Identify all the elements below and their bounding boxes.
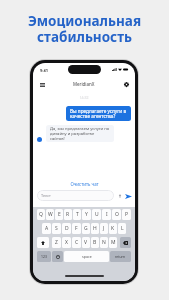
button[interactable]: Текст: [37, 190, 114, 201]
staticText: R: [66, 211, 70, 218]
button[interactable]: Shift: [37, 237, 49, 248]
staticText: W: [48, 211, 53, 218]
button[interactable]: Settings: [122, 80, 131, 89]
button[interactable]: E: [55, 209, 63, 220]
button[interactable]: Attach: [116, 192, 123, 199]
staticText: L: [121, 225, 124, 232]
staticText: N: [102, 239, 106, 246]
staticText: S: [55, 225, 58, 232]
staticText: F: [75, 225, 78, 232]
staticText: 9:41: [40, 68, 48, 73]
button[interactable]: Send: [124, 192, 132, 200]
button[interactable]: N: [100, 237, 108, 248]
other: Backspace: [123, 241, 128, 245]
button[interactable]: space: [64, 251, 109, 262]
staticText: U: [95, 211, 99, 218]
staticText: X: [65, 239, 68, 246]
staticText: 123: [41, 254, 47, 259]
staticText: E: [58, 211, 61, 218]
staticText: P: [125, 211, 129, 218]
button[interactable]: Z: [52, 237, 61, 248]
button[interactable]: V: [82, 237, 90, 248]
button[interactable]: H: [91, 223, 99, 234]
button[interactable]: M: [109, 237, 117, 248]
button[interactable]: Y: [82, 209, 91, 220]
staticText: Текст: [41, 193, 51, 198]
button[interactable]: X: [62, 237, 71, 248]
button[interactable]: D: [62, 223, 71, 234]
button[interactable]: L: [118, 223, 126, 234]
button[interactable]: return: [110, 251, 131, 262]
staticText: space: [82, 254, 92, 259]
button[interactable]: P: [122, 209, 131, 220]
other: Emoji: [56, 255, 60, 259]
staticText: I: [106, 211, 108, 218]
button[interactable]: O: [112, 209, 121, 220]
button[interactable]: Q: [37, 209, 45, 220]
staticText: Y: [85, 211, 88, 218]
staticText: Z: [55, 239, 58, 246]
button[interactable]: Вы предлагаете услуги в качестве агентст…: [66, 106, 131, 121]
button[interactable]: A: [42, 223, 51, 234]
button[interactable]: I: [102, 209, 111, 220]
button[interactable]: C: [72, 237, 81, 248]
button[interactable]: U: [92, 209, 101, 220]
button[interactable]: Да, мы предлагаем услуги по дизайну и ра…: [46, 125, 114, 142]
button[interactable]: S: [52, 223, 61, 234]
staticText: V: [84, 239, 88, 246]
staticText: return: [115, 254, 126, 259]
staticText: Да, мы предлагаем услуги по дизайну и ра…: [50, 126, 110, 141]
staticText: C: [75, 239, 79, 246]
staticText: D: [65, 225, 69, 232]
staticText: MeridianX: [73, 81, 95, 87]
staticText: B: [93, 239, 97, 246]
button[interactable]: F: [72, 223, 81, 234]
button[interactable]: Backspace: [120, 237, 131, 248]
staticText: Эмоциональная стабильность: [0, 12, 169, 46]
button[interactable]: B: [91, 237, 99, 248]
staticText: M: [111, 239, 116, 246]
button[interactable]: Menu: [37, 80, 47, 89]
button[interactable]: J: [100, 223, 108, 234]
other: Shift: [41, 241, 45, 245]
button[interactable]: G: [82, 223, 90, 234]
button[interactable]: R: [64, 209, 72, 220]
staticText: J: [103, 225, 105, 232]
staticText: O: [115, 211, 119, 218]
staticText: Вы предлагаете услуги в качестве агентст…: [70, 108, 127, 119]
staticText: Очистить чат: [70, 181, 99, 187]
button[interactable]: K: [109, 223, 117, 234]
button[interactable]: 123: [37, 251, 51, 262]
button[interactable]: Emoji: [52, 251, 63, 262]
staticText: T: [76, 211, 79, 218]
staticText: K: [111, 225, 115, 232]
staticText: H: [93, 225, 97, 232]
button[interactable]: Очистить чат: [33, 181, 135, 187]
staticText: G: [84, 225, 88, 232]
staticText: 14:32: [33, 95, 135, 100]
button[interactable]: W: [46, 209, 54, 220]
button[interactable]: T: [73, 209, 81, 220]
staticText: Q: [39, 211, 43, 218]
staticText: A: [45, 225, 49, 232]
